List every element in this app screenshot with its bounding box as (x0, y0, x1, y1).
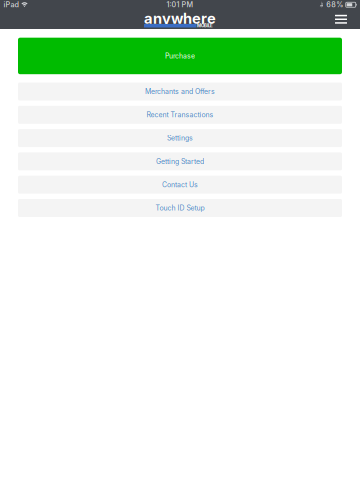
staticText: 1:01 PM (166, 0, 193, 9)
button[interactable]: Merchants and Offers (18, 82, 342, 100)
staticText: Getting Started (156, 157, 204, 166)
staticText: anywhere (144, 10, 216, 27)
button[interactable]: Purchase (0, 38, 360, 74)
staticText: Merchants and Offers (145, 87, 215, 96)
staticText: Purchase (165, 52, 195, 60)
button[interactable]: Settings (18, 129, 342, 147)
button[interactable]: Touch ID Setup (18, 199, 342, 217)
button[interactable]: Menu (330, 9, 352, 29)
staticText: Touch ID Setup (155, 204, 204, 212)
staticText: iPad (3, 0, 18, 9)
button[interactable]: Recent Transactions (18, 106, 342, 124)
button[interactable]: Contact Us (18, 176, 342, 194)
staticText: Contact Us (162, 180, 198, 189)
staticText: Recent Transactions (146, 111, 213, 119)
button[interactable]: Getting Started (18, 152, 342, 170)
staticText: MOBILE (197, 23, 213, 28)
staticText: Settings (167, 134, 193, 142)
staticText: 68% (326, 0, 343, 9)
